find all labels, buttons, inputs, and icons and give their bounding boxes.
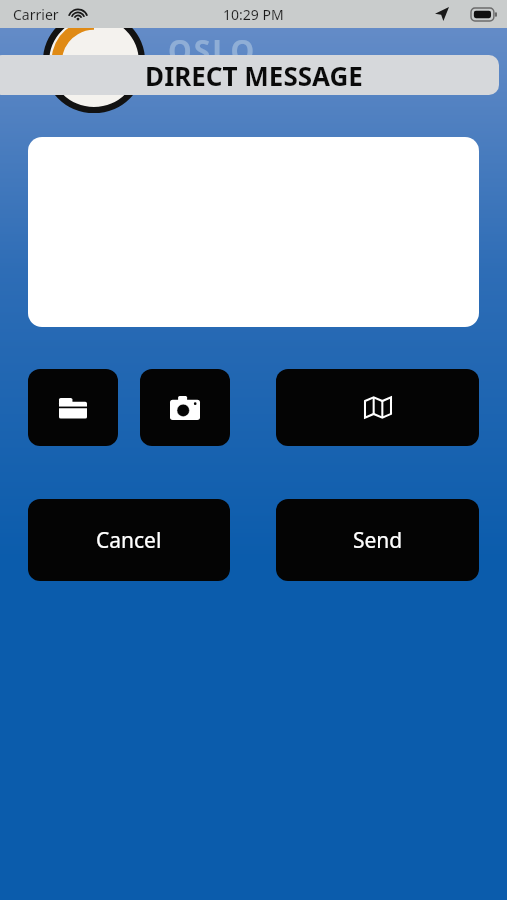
staticText: DIRECT MESSAGE (145, 58, 363, 93)
staticText: Carrier (13, 5, 59, 24)
button[interactable]: Attach file (28, 369, 118, 446)
staticText: Cancel (96, 526, 162, 555)
button[interactable] (28, 137, 479, 327)
staticText: OSLO (168, 30, 257, 71)
button[interactable]: Take photo (140, 369, 230, 446)
button[interactable]: Cancel (28, 499, 230, 581)
button[interactable]: Share location on map (276, 369, 479, 446)
staticText: 10:29 PM (223, 5, 284, 24)
staticText: Send (353, 526, 403, 555)
button[interactable]: Send (276, 499, 479, 581)
